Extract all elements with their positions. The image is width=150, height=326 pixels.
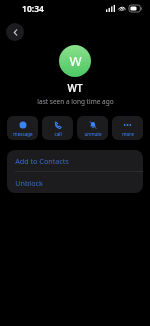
staticText: WT	[67, 81, 83, 95]
button[interactable]: Add to Contacts	[7, 150, 143, 171]
staticText: 10:34	[22, 3, 44, 15]
button[interactable]: unmute	[77, 116, 108, 140]
staticText: Unblock	[15, 178, 43, 188]
staticText: more	[122, 131, 134, 137]
button[interactable]: message	[7, 116, 38, 140]
staticText: last seen a long time ago	[37, 97, 114, 106]
staticText: Add to Contacts	[15, 156, 69, 166]
staticText: message	[13, 131, 33, 137]
staticText: unmute	[84, 131, 102, 137]
button[interactable]: call	[42, 116, 73, 140]
staticText: call	[54, 131, 62, 137]
button[interactable]: more	[112, 116, 143, 140]
button[interactable]: Unblock	[7, 172, 143, 193]
staticText: W	[69, 52, 82, 70]
button[interactable]: Back	[6, 23, 24, 41]
